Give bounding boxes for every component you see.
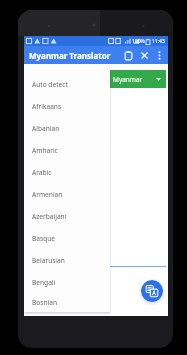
- button[interactable]: Basque: [24, 227, 110, 249]
- button[interactable]: Albanian: [24, 117, 110, 139]
- button[interactable]: Armenian: [24, 183, 110, 205]
- button[interactable]: Auto detect: [24, 73, 110, 95]
- button[interactable]: More options: [152, 48, 166, 62]
- button[interactable]: Translate: [141, 280, 163, 302]
- button[interactable]: Afrikaans: [24, 95, 110, 117]
- button[interactable]: Clipboard: [120, 47, 136, 63]
- button[interactable]: Arabic: [24, 161, 110, 183]
- staticText: 11:43: [152, 38, 165, 45]
- staticText: Azerbaijani: [32, 212, 67, 221]
- staticText: Afrikaans: [32, 102, 62, 111]
- staticText: Arabic: [32, 168, 52, 177]
- staticText: Myanmar: [113, 75, 143, 84]
- button[interactable]: Myanmar: [110, 70, 166, 88]
- staticText: Amharic: [32, 146, 58, 155]
- staticText: Bosnian: [32, 298, 57, 307]
- staticText: Myanmar Translator: [29, 50, 111, 61]
- button[interactable]: Azerbaijani: [24, 205, 110, 227]
- button[interactable]: Amharic: [24, 139, 110, 161]
- button[interactable]: Bosnian: [24, 293, 110, 312]
- staticText: Belarusian: [32, 256, 65, 265]
- button[interactable]: Bengali: [24, 271, 110, 293]
- button[interactable]: Belarusian: [24, 249, 110, 271]
- staticText: Basque: [32, 234, 55, 243]
- button[interactable]: Close: [136, 47, 152, 63]
- staticText: Bengali: [32, 278, 56, 287]
- staticText: 100%: [132, 38, 145, 45]
- staticText: Armenian: [32, 190, 63, 199]
- staticText: Albanian: [32, 124, 60, 133]
- staticText: Auto detect: [32, 80, 68, 89]
